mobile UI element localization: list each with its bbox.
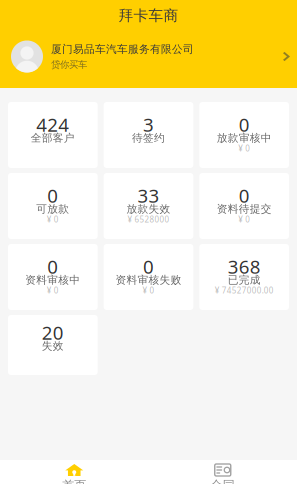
staticText: 0 [143,254,154,279]
staticText: 拜卡车商 [118,6,178,24]
staticText: ¥ 0 [238,143,250,154]
staticText: 资料待提交 [217,202,272,215]
staticText: 厦门易品车汽车服务有限公司 [51,43,194,56]
staticText: ¥ 6528000 [127,214,169,225]
staticText: 全部客户 [31,131,75,144]
staticText: ¥ 0 [47,214,59,225]
staticText: 已完成 [228,273,261,286]
button[interactable]: 20 [8,315,98,375]
button[interactable]: 0 [104,244,193,310]
staticText: 368 [228,254,261,279]
staticText: 33 [137,183,159,208]
staticText: 可放款 [36,202,69,215]
button[interactable]: 424 [8,102,98,168]
staticText: 放款审核中 [217,131,272,144]
staticText: 0 [239,183,250,208]
staticText: 20 [42,320,64,345]
staticText: 合同 [211,478,235,484]
staticText: 资料审核失败 [115,273,181,286]
staticText: 424 [36,112,69,137]
staticText: 3 [143,112,154,137]
button[interactable]: 33 [104,173,193,239]
button[interactable]: 3 [104,102,193,168]
staticText: 资料审核中 [25,273,80,286]
staticText: 放款失效 [126,202,170,215]
button[interactable]: 首页 [0,460,148,484]
staticText: 贷你买车 [51,59,87,70]
button[interactable]: 0 [199,102,289,168]
staticText: 0 [239,112,250,137]
staticText: 0 [47,254,58,279]
staticText: 失效 [42,339,64,352]
staticText: ¥ 0 [238,214,250,225]
button[interactable]: 厦门易品车汽车服务有限公司 [0,31,297,82]
staticText: ¥ 0 [47,285,59,296]
button[interactable]: 368 [199,244,289,310]
staticText: ¥ 0 [142,285,154,296]
button[interactable]: 0 [199,173,289,239]
staticText: 待签约 [132,131,165,144]
staticText: ¥ 74527000.00 [215,285,274,296]
staticText: 首页 [62,478,86,484]
button[interactable]: 0 [8,244,98,310]
button[interactable]: 0 [8,173,98,239]
button[interactable]: 合同 [148,460,297,484]
staticText: 0 [47,183,58,208]
